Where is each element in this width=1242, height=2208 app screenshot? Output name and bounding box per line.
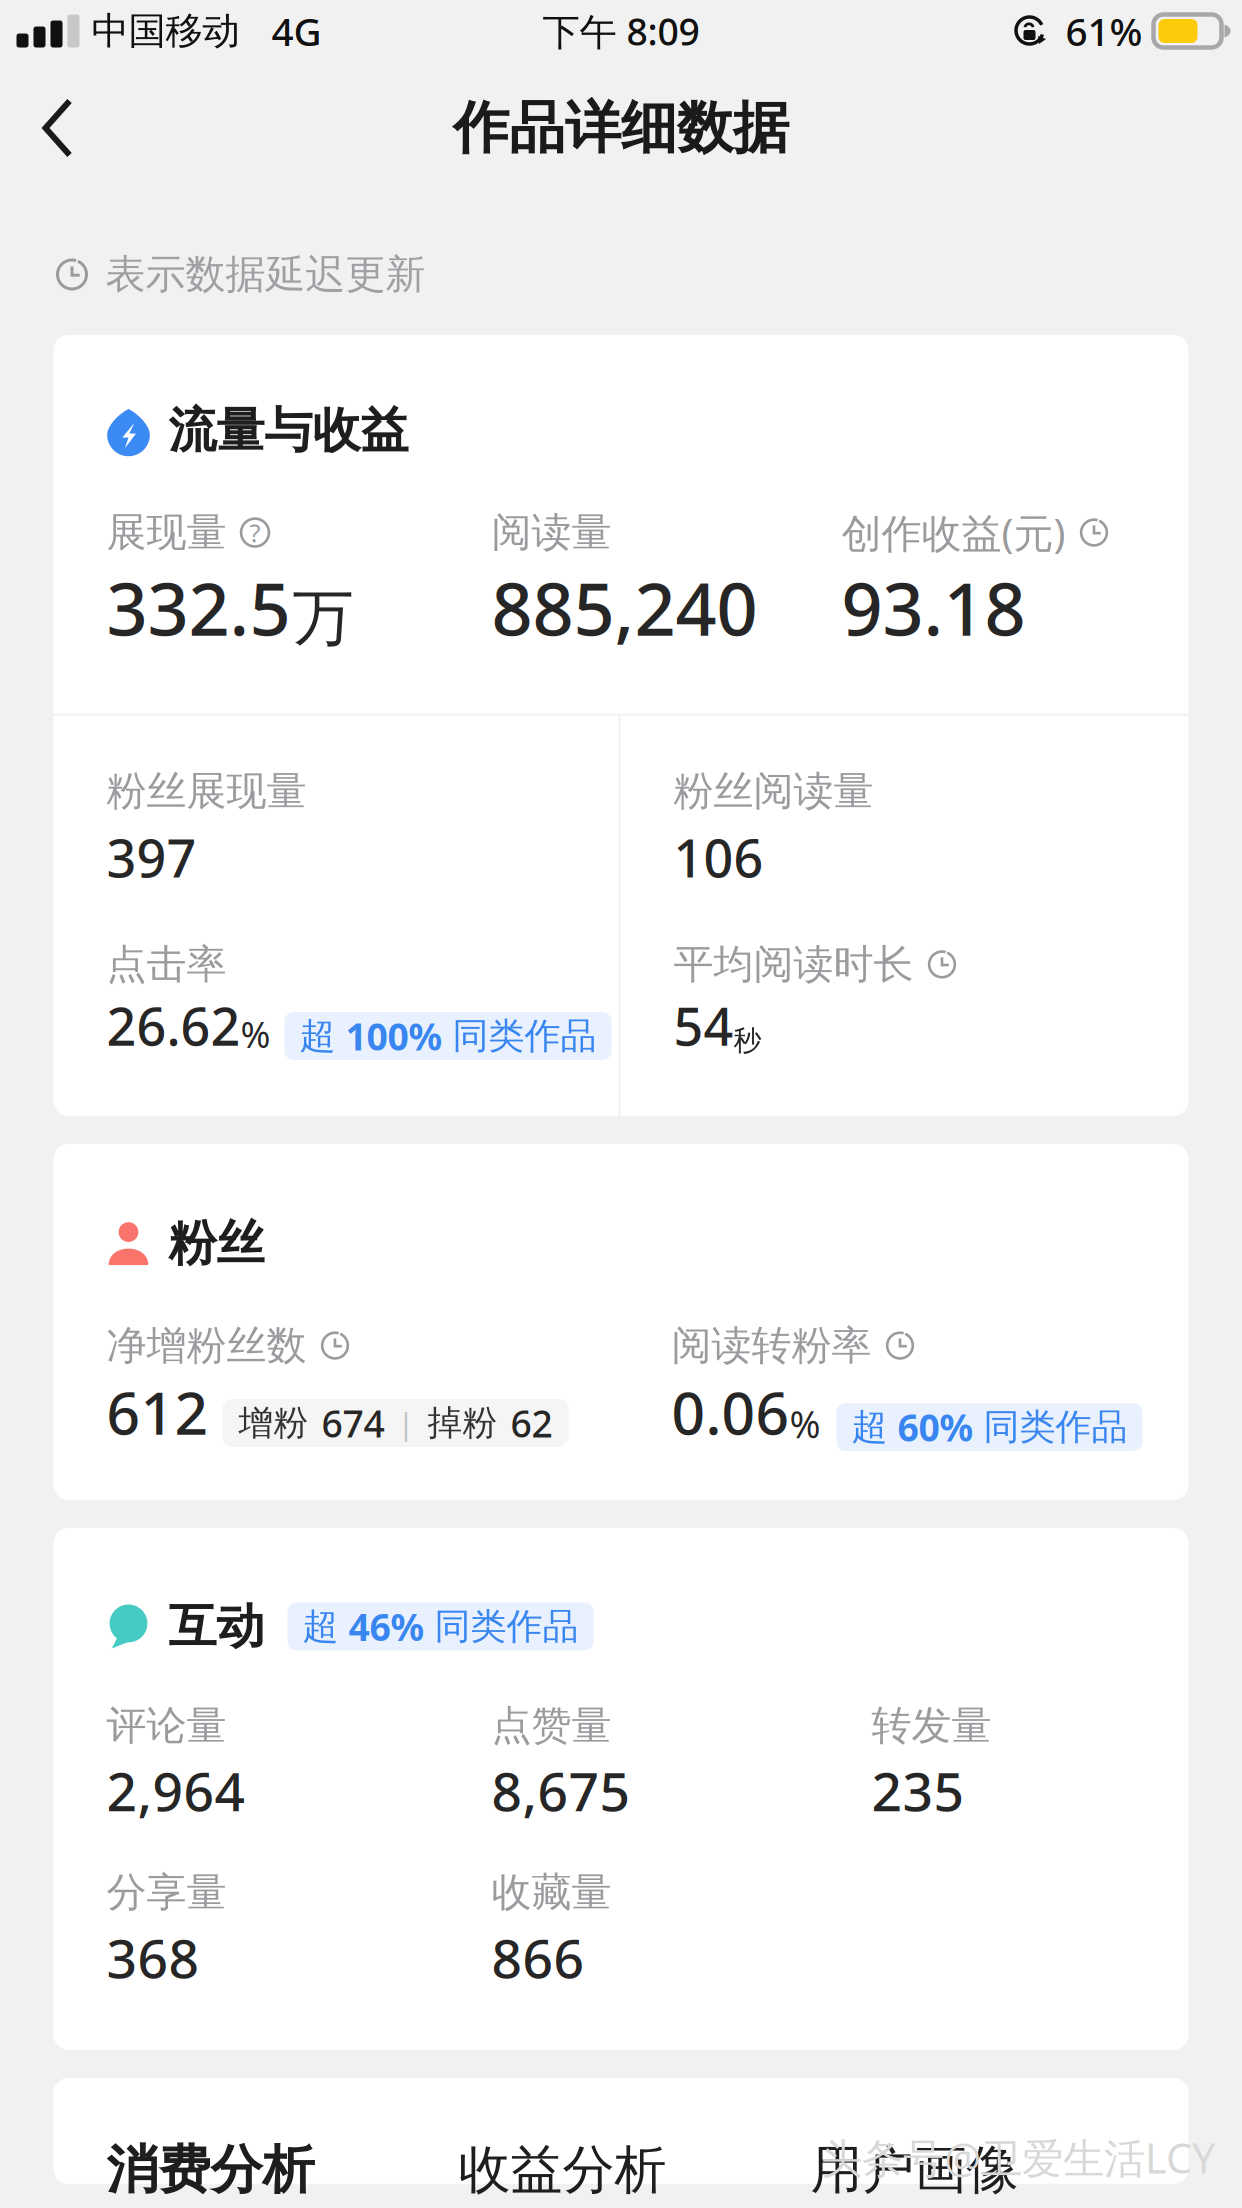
staticText: 46% (348, 1602, 424, 1651)
staticText: 用户画像 (810, 2138, 1018, 2202)
staticText: % (240, 1010, 270, 1058)
staticText: 62 (510, 1398, 552, 1448)
staticText: 收益分析 (458, 2138, 666, 2202)
staticText: 612 (106, 1373, 208, 1451)
staticText: 60% (897, 1402, 973, 1452)
button[interactable]: 消费分析 (106, 2104, 458, 2208)
staticText: 同类作品 (452, 1014, 596, 1058)
staticText: 866 (491, 1922, 584, 1993)
staticText: 展现量 (106, 508, 226, 557)
staticText: 消费分析 (106, 2138, 314, 2202)
staticText: 397 (106, 823, 196, 892)
staticText: 61% (1065, 5, 1142, 57)
staticText: 0.06 (671, 1373, 789, 1451)
staticText: 超 (299, 1014, 335, 1058)
staticText: 106 (673, 823, 763, 892)
staticText: % (789, 1399, 820, 1449)
staticText: 粉丝 (168, 1214, 264, 1273)
staticText: 万 (292, 580, 353, 656)
staticText: 93.18 (841, 560, 1025, 656)
staticText: 4G (271, 5, 321, 57)
staticText: 100% (345, 1011, 442, 1061)
staticText: 2,964 (106, 1755, 245, 1826)
staticText: 674 (321, 1398, 384, 1448)
staticText: 阅读转粉率 (671, 1321, 871, 1370)
staticText: 阅读量 (491, 508, 611, 557)
staticText: 净增粉丝数 (106, 1321, 306, 1370)
staticText: ? (249, 516, 260, 549)
staticText: 互动 (168, 1597, 264, 1656)
staticText: 8,675 (491, 1755, 630, 1826)
staticText: 增粉 (238, 1402, 308, 1444)
staticText: 粉丝展现量 (106, 767, 306, 816)
staticText: 秒 (733, 1023, 761, 1058)
staticText: 同类作品 (434, 1604, 578, 1649)
staticText: 54 (673, 991, 733, 1060)
staticText: 中国移动 (91, 8, 239, 54)
staticText: 超 (851, 1405, 887, 1449)
staticText: 26.62 (106, 991, 240, 1060)
staticText: 收藏量 (491, 1868, 611, 1917)
staticText: 头条号@卫爱生活LCY (821, 2130, 1215, 2185)
button[interactable]: 收益分析 (458, 2104, 810, 2208)
staticText: 下午 8:09 (542, 6, 699, 56)
button[interactable]: 用户画像 (810, 2104, 1018, 2208)
staticText: 分享量 (106, 1868, 226, 1917)
staticText: 转发量 (871, 1701, 991, 1750)
staticText: 368 (106, 1922, 199, 1993)
staticText: 掉粉 (427, 1402, 497, 1444)
staticText: 作品详细数据 (453, 94, 789, 162)
staticText: 同类作品 (983, 1405, 1127, 1449)
staticText: 点击率 (106, 940, 226, 989)
staticText: 点赞量 (491, 1701, 611, 1750)
staticText: 332.5 (106, 560, 290, 656)
staticText: 评论量 (106, 1701, 226, 1750)
staticText: 创作收益(元) (841, 506, 1065, 559)
staticText: 885,240 (491, 560, 757, 656)
staticText: 粉丝阅读量 (673, 767, 873, 816)
staticText: 表示数据延迟更新 (105, 250, 425, 299)
staticText: 流量与收益 (168, 401, 408, 460)
button[interactable]: Back (0, 81, 107, 175)
staticText: | (397, 1403, 414, 1443)
staticText: 超 (302, 1604, 338, 1649)
staticText: 平均阅读时长 (673, 940, 913, 989)
staticText: 235 (871, 1755, 964, 1826)
